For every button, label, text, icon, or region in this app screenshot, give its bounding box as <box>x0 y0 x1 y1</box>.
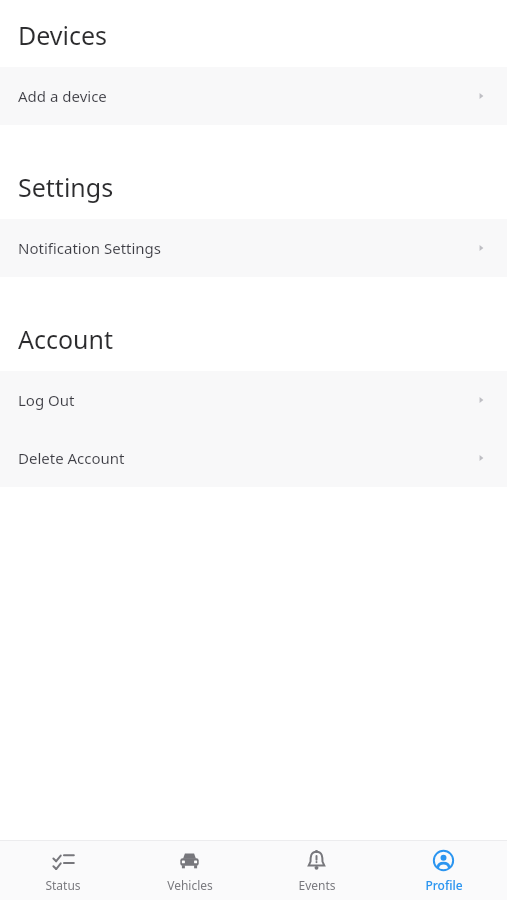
staticText: Delete Account <box>18 448 475 468</box>
button[interactable]: Status <box>0 841 126 900</box>
staticText: Events <box>298 877 336 893</box>
staticText: Profile <box>425 877 463 893</box>
button[interactable]: Events <box>253 841 380 900</box>
staticText: Devices <box>18 18 108 52</box>
staticText: Account <box>18 322 114 356</box>
button[interactable]: Add a device <box>0 67 507 125</box>
button[interactable]: Notification Settings <box>0 219 507 277</box>
staticText: Status <box>45 877 81 893</box>
button[interactable]: Vehicles <box>126 841 253 900</box>
button[interactable]: Delete Account <box>0 429 507 487</box>
staticText: Add a device <box>18 86 475 106</box>
staticText: Vehicles <box>167 877 213 893</box>
staticText: Log Out <box>18 390 475 410</box>
staticText: Notification Settings <box>18 238 475 258</box>
button[interactable]: Profile <box>380 841 507 900</box>
button[interactable]: Log Out <box>0 371 507 429</box>
staticText: Settings <box>18 170 114 204</box>
